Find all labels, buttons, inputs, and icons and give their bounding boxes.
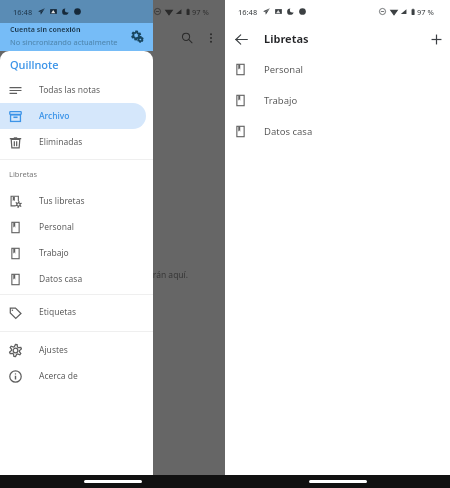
staticText: Datos casa: [264, 125, 313, 138]
button[interactable]: Acerca de: [0, 363, 146, 389]
staticText: Libretas: [264, 31, 309, 46]
staticText: Ajustes: [39, 344, 68, 356]
staticText: 97 %: [417, 7, 434, 17]
staticText: 97 %: [192, 7, 209, 17]
button[interactable]: Tus libretas: [0, 188, 146, 214]
button[interactable]: Ajustes: [0, 337, 146, 363]
staticText: Quillnote: [10, 57, 59, 72]
button[interactable]: Etiquetas: [0, 299, 146, 325]
staticText: 16:48: [13, 7, 33, 17]
button[interactable]: Archivo: [0, 103, 146, 129]
button[interactable]: Search: [176, 27, 198, 49]
staticText: Las notas archivadas aparecerán aquí.: [36, 269, 189, 281]
staticText: Etiquetas: [39, 306, 77, 318]
staticText: Eliminadas: [39, 136, 83, 148]
button[interactable]: Back: [229, 27, 253, 51]
button[interactable]: Datos casa: [0, 266, 146, 292]
button[interactable]: Datos casa: [225, 116, 450, 147]
button[interactable]: Todas las notas: [0, 77, 146, 103]
staticText: Trabajo: [39, 247, 69, 259]
button[interactable]: More options: [200, 27, 222, 49]
button[interactable]: Eliminadas: [0, 129, 146, 155]
staticText: Acerca de: [39, 370, 78, 382]
button[interactable]: Trabajo: [0, 240, 146, 266]
button[interactable]: Manage account: [126, 25, 148, 47]
staticText: 16:48: [238, 7, 258, 17]
staticText: Trabajo: [264, 94, 298, 107]
staticText: Personal: [264, 63, 303, 76]
staticText: Cuenta sin conexión: [10, 25, 81, 35]
staticText: Todas las notas: [39, 84, 101, 96]
staticText: Archivo: [39, 110, 70, 122]
staticText: Libretas: [9, 169, 38, 179]
staticText: No sincronizando actualmente: [10, 37, 118, 47]
button[interactable]: Add notebook: [424, 27, 448, 51]
button[interactable]: Trabajo: [225, 85, 450, 116]
staticText: Tus libretas: [39, 195, 85, 207]
button[interactable]: Personal: [0, 214, 146, 240]
staticText: Datos casa: [39, 273, 83, 285]
button[interactable]: Personal: [225, 54, 450, 85]
staticText: Personal: [39, 221, 74, 233]
